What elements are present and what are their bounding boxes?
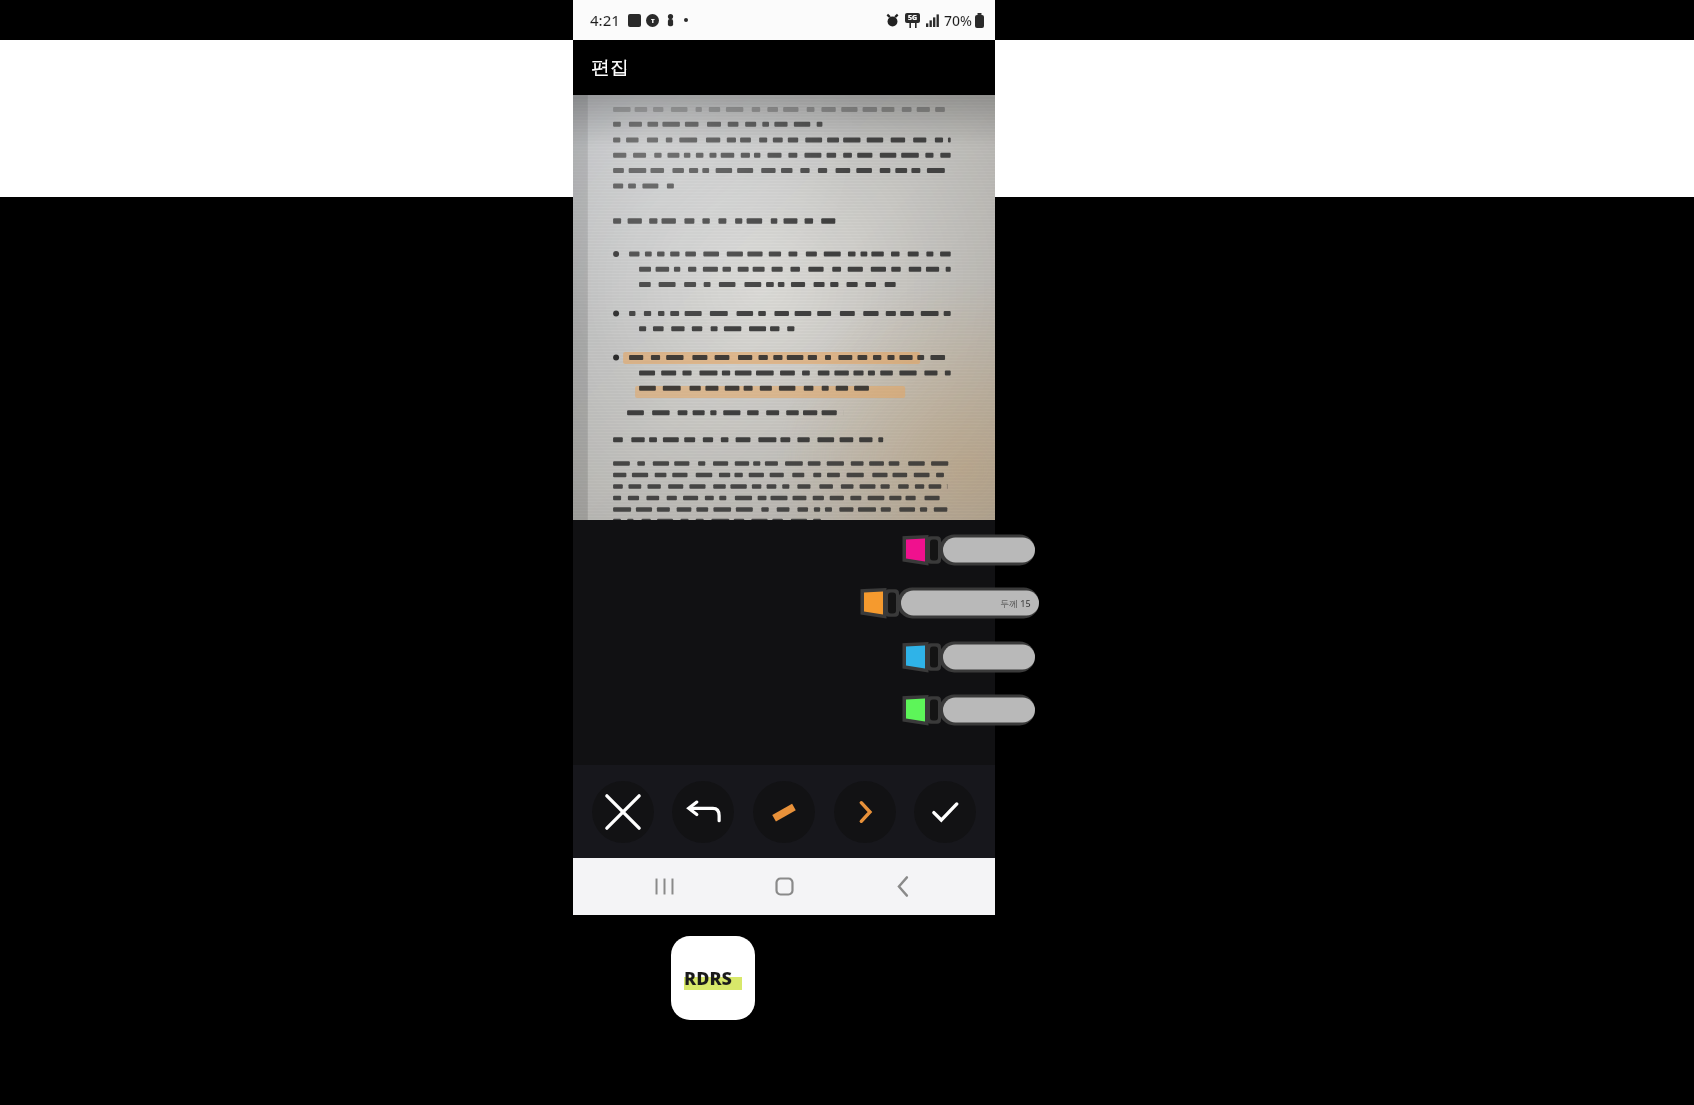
staticText: 편집	[591, 56, 629, 80]
button[interactable]: Undo	[672, 781, 734, 843]
button[interactable]: Done	[914, 781, 976, 843]
button[interactable]: Recent apps	[636, 858, 693, 915]
button[interactable]: Close	[592, 781, 654, 843]
staticText: 두께 15	[1000, 597, 1031, 609]
staticText: T	[651, 17, 655, 25]
button[interactable]: Orange highlighter selected	[861, 583, 1039, 623]
button[interactable]: Back	[875, 858, 932, 915]
staticText: 70%	[944, 11, 972, 30]
button[interactable]: RDRS app icon	[671, 936, 755, 1020]
button[interactable]: Blue highlighter	[903, 637, 1035, 677]
button[interactable]: Redo	[834, 781, 896, 843]
button[interactable]: Pink highlighter	[903, 530, 1035, 570]
button[interactable]: Pen stroke style	[753, 781, 815, 843]
button[interactable]: Home	[756, 858, 813, 915]
button[interactable]: Green highlighter	[903, 690, 1035, 730]
staticText: 4:21	[590, 10, 620, 30]
staticText: 5G	[908, 13, 918, 23]
staticText: RDRS	[684, 966, 732, 991]
